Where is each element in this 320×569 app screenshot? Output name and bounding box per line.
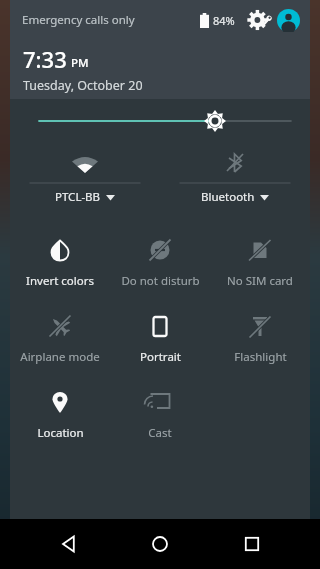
- staticText: 84%: [213, 13, 235, 28]
- button[interactable]: Bluetooth: [160, 143, 310, 211]
- button[interactable]: Recents: [229, 521, 275, 567]
- staticText: Tuesday, October 20: [23, 77, 143, 94]
- staticText: Invert colors: [26, 273, 94, 289]
- staticText: Airplane mode: [20, 349, 100, 365]
- button[interactable]: Portrait: [110, 297, 210, 373]
- staticText: Do not disturb: [121, 273, 200, 289]
- button[interactable]: Invert colors: [10, 221, 110, 297]
- staticText: 7:33: [23, 44, 67, 74]
- button[interactable]: Cast: [110, 373, 210, 449]
- staticText: No SIM card: [227, 273, 293, 289]
- button[interactable]: Back: [46, 521, 92, 567]
- button[interactable]: Location: [10, 373, 110, 449]
- staticText: Emergency calls only: [22, 12, 135, 28]
- staticText: Portrait: [140, 349, 181, 365]
- button[interactable]: Airplane mode: [10, 297, 110, 373]
- button[interactable]: Settings: [247, 7, 273, 33]
- staticText: Location: [37, 425, 84, 441]
- button[interactable]: No SIM card: [210, 221, 310, 297]
- button[interactable]: Flashlight: [210, 297, 310, 373]
- button[interactable]: PTCL-BB: [10, 143, 160, 211]
- staticText: Bluetooth: [201, 189, 255, 205]
- staticText: PTCL-BB: [55, 189, 101, 205]
- staticText: Cast: [148, 425, 172, 441]
- button[interactable]: Home: [137, 521, 183, 567]
- button[interactable]: User profile: [277, 9, 300, 32]
- staticText: Flashlight: [234, 349, 287, 365]
- button[interactable]: Brightness: [10, 99, 310, 143]
- button[interactable]: Do not disturb: [110, 221, 210, 297]
- staticText: PM: [71, 55, 89, 71]
